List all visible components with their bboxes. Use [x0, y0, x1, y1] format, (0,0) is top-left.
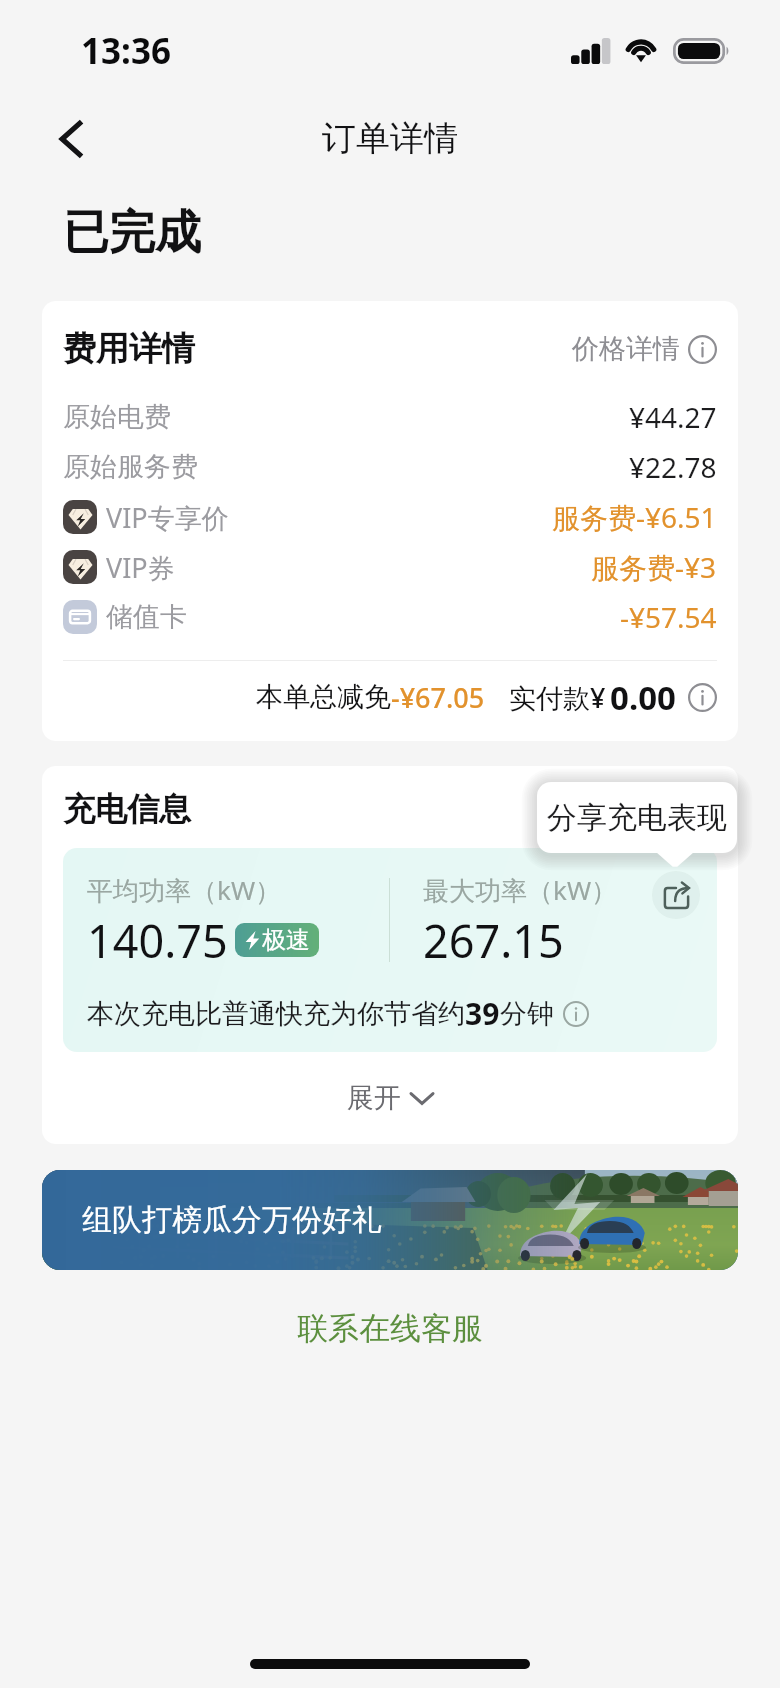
staticText: 39: [465, 993, 500, 1034]
staticText: 订单详情: [322, 117, 458, 160]
staticText: 原始服务费: [63, 450, 198, 484]
staticText: 储值卡: [106, 600, 187, 634]
button[interactable]: 展开: [42, 1052, 738, 1144]
staticText: -¥57.54: [620, 598, 717, 636]
staticText: 服务费-¥3: [591, 548, 717, 586]
staticText: 平均功率（kW）: [87, 872, 282, 908]
staticText: -¥67.05: [391, 679, 485, 716]
staticText: 费用详情: [63, 328, 195, 370]
button[interactable]: 联系在线客服: [283, 1303, 497, 1354]
staticText: 展开: [347, 1081, 401, 1115]
button[interactable]: 价格详情: [572, 332, 717, 366]
staticText: 服务费-¥6.51: [552, 498, 717, 536]
staticText: 已完成: [63, 204, 201, 262]
staticText: VIP专享价: [106, 499, 229, 536]
staticText: VIP券: [106, 549, 175, 586]
staticText: ¥22.78: [629, 448, 717, 486]
staticText: 267.15: [423, 910, 564, 971]
staticText: 13:36: [81, 27, 171, 75]
button[interactable]: Back: [43, 111, 99, 167]
button[interactable]: 组队打榜瓜分万份好礼: [42, 1170, 738, 1270]
staticText: 充电信息: [63, 789, 191, 829]
staticText: 实付款¥: [509, 679, 606, 716]
staticText: 价格详情: [572, 332, 680, 366]
staticText: 组队打榜瓜分万份好礼: [82, 1201, 382, 1239]
staticText: 原始电费: [63, 400, 171, 434]
staticText: 0.00: [610, 675, 676, 720]
button[interactable]: 分享充电表现: [537, 782, 737, 853]
staticText: 140.75: [87, 910, 228, 971]
staticText: 最大功率（kW）: [423, 872, 618, 908]
staticText: 本次充电比普通快充为你节省约: [87, 997, 465, 1031]
staticText: 极速: [262, 925, 310, 955]
staticText: 分钟: [500, 997, 554, 1031]
staticText: ¥44.27: [629, 398, 717, 436]
staticText: 分享充电表现: [547, 799, 727, 837]
staticText: 本单总减免: [256, 680, 391, 714]
button[interactable]: Share: [652, 871, 700, 919]
staticText: 联系在线客服: [297, 1309, 483, 1348]
